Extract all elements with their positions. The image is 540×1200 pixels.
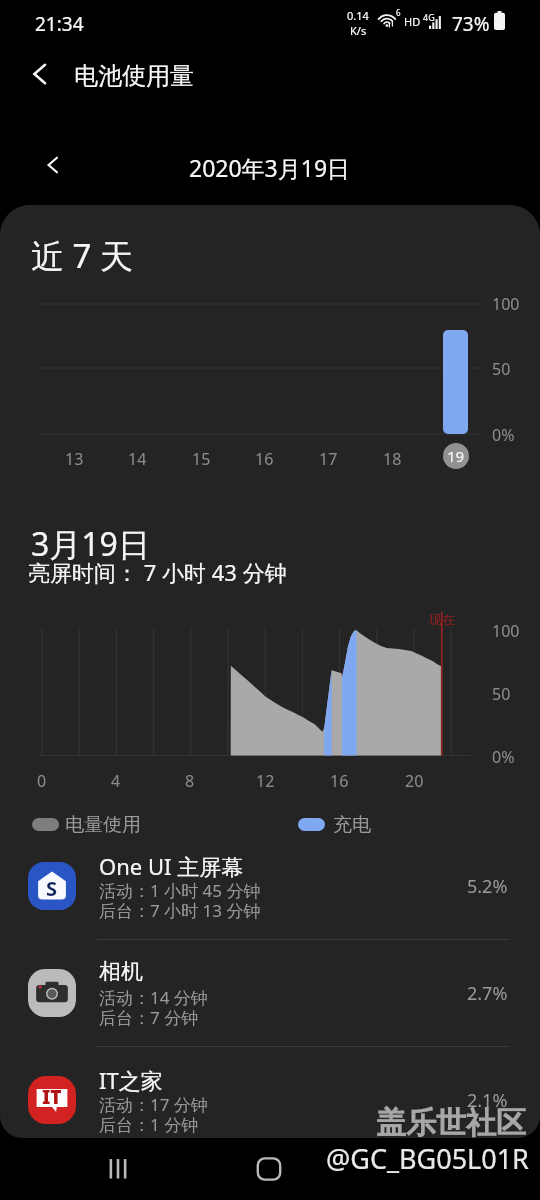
staticText: One UI 主屏幕	[99, 851, 244, 881]
staticText: 15	[192, 448, 211, 470]
staticText: 相机	[99, 958, 143, 986]
staticText: 73%	[452, 11, 490, 37]
staticText: 100	[492, 293, 520, 315]
staticText: IT之家	[99, 1065, 163, 1095]
staticText: HD	[404, 14, 421, 29]
staticText: 8	[185, 770, 195, 792]
staticText: 后台：7 分钟	[99, 1006, 199, 1029]
staticText: 4G	[423, 11, 435, 23]
staticText: 活动：1 小时 45 分钟	[99, 879, 261, 902]
staticText: 6	[396, 7, 401, 18]
button[interactable]: Previous day	[37, 149, 69, 181]
staticText: 现在	[429, 611, 455, 627]
staticText: S	[46, 875, 58, 902]
staticText: 盖乐世社区	[376, 1104, 526, 1142]
staticText: 18	[383, 448, 402, 470]
staticText: IT	[42, 1084, 62, 1110]
staticText: 21:34	[35, 11, 84, 37]
button[interactable]: IT	[0, 1065, 540, 1138]
button[interactable]: S	[0, 851, 540, 955]
staticText: 0%	[492, 424, 515, 446]
staticText: 50	[492, 683, 511, 705]
staticText: 充电	[333, 813, 371, 837]
staticText: 近 7 天	[31, 233, 134, 278]
staticText: 2.7%	[467, 981, 508, 1006]
staticText: 4	[111, 770, 121, 792]
staticText: 电量使用	[65, 813, 141, 837]
button[interactable]: Home	[234, 1138, 304, 1200]
button[interactable]: 相机	[0, 958, 540, 1062]
staticText: 0	[37, 770, 47, 792]
button[interactable]: Back	[385, 1138, 455, 1200]
button[interactable]: 电池使用量	[0, 46, 540, 106]
staticText: 活动：14 分钟	[99, 986, 208, 1009]
staticText: 14	[128, 448, 147, 470]
staticText: 活动：17 分钟	[99, 1093, 208, 1116]
staticText: 20	[405, 770, 424, 792]
staticText: 亮屏时间： 7 小时 43 分钟	[28, 557, 287, 587]
button[interactable]: Recent apps	[83, 1138, 153, 1200]
staticText: @GC_BG05L01R	[326, 1140, 529, 1177]
staticText: 3月19日	[31, 522, 150, 566]
staticText: 后台：1 分钟	[99, 1113, 199, 1136]
staticText: 17	[319, 448, 338, 470]
staticText: 19	[447, 446, 465, 466]
staticText: 13	[65, 448, 84, 470]
staticText: 50	[492, 358, 511, 380]
staticText: 0.14	[347, 8, 369, 23]
staticText: K/s	[350, 23, 367, 38]
staticText: 2.1%	[467, 1088, 508, 1113]
staticText: 0%	[492, 746, 515, 768]
staticText: 后台：7 小时 13 分钟	[99, 899, 261, 922]
staticText: 2020年3月19日	[189, 152, 351, 183]
staticText: 16	[330, 770, 349, 792]
staticText: 12	[256, 770, 275, 792]
staticText: 5.2%	[467, 874, 508, 899]
staticText: 电池使用量	[74, 61, 194, 91]
staticText: 16	[255, 448, 274, 470]
staticText: 100	[492, 620, 520, 642]
